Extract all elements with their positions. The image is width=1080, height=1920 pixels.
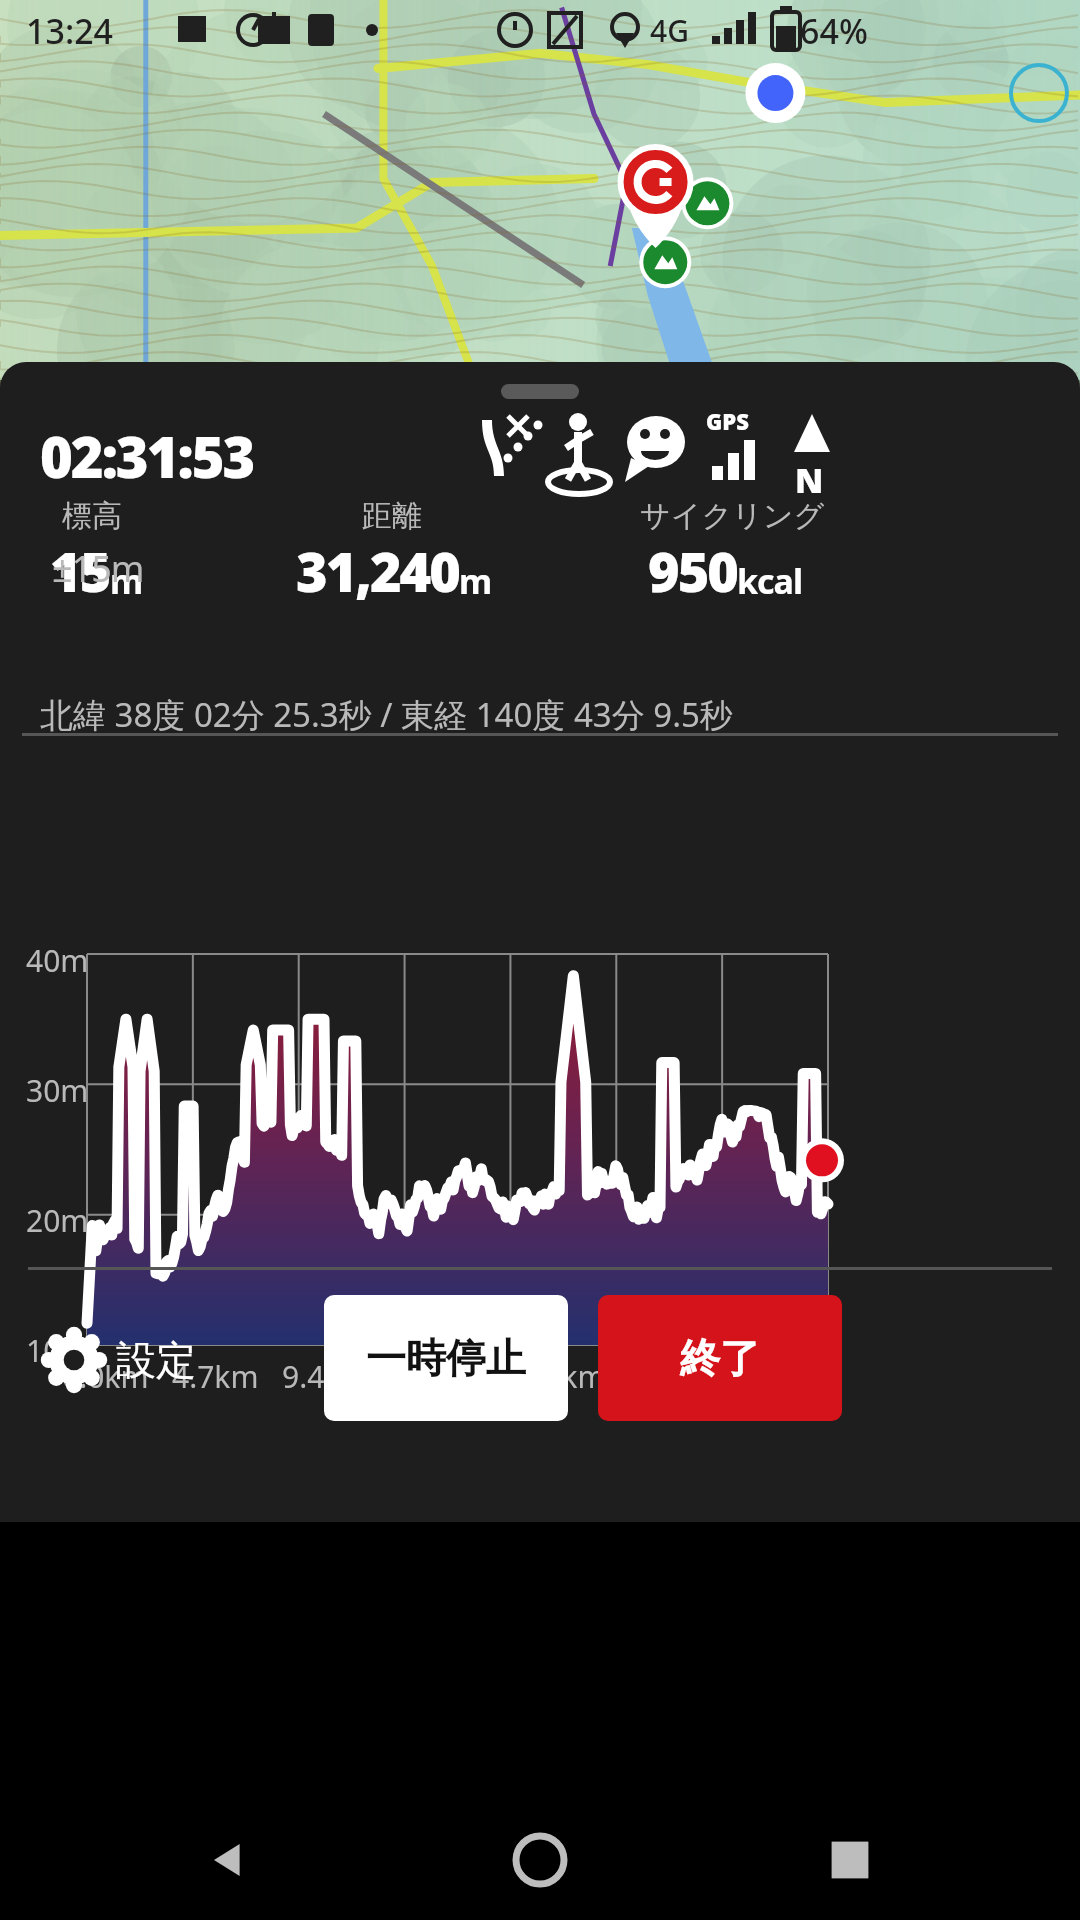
staticText: kcal: [737, 558, 803, 604]
staticText: 4.7km: [172, 1356, 259, 1397]
button[interactable]: Home: [500, 1820, 580, 1900]
staticText: 0.0km: [62, 1356, 149, 1397]
staticText: 64%: [800, 8, 868, 54]
staticText: 9.4km: [282, 1356, 369, 1397]
staticText: 18.7km: [502, 1356, 606, 1397]
staticText: 北緯 38度 02分 25.3秒 / 東経 140度 43分 9.5秒: [40, 692, 733, 737]
staticText: 02:31:53: [40, 418, 254, 494]
staticText: GPS: [706, 406, 749, 436]
button[interactable]: 設定: [32, 1312, 232, 1408]
staticText: 14.1km: [392, 1356, 496, 1397]
staticText: m: [459, 558, 492, 604]
staticText: 距離: [362, 497, 422, 535]
staticText: 一時停止: [366, 1333, 526, 1383]
staticText: 10m: [26, 1330, 89, 1371]
staticText: 20m: [26, 1200, 89, 1241]
button[interactable]: 一時停止: [324, 1295, 568, 1421]
staticText: 31,240: [296, 534, 459, 608]
staticText: 設定: [116, 1335, 196, 1385]
staticText: 終了: [680, 1333, 760, 1383]
staticText: m: [110, 558, 143, 604]
staticText: 13:24: [26, 8, 114, 54]
button[interactable]: Back: [190, 1820, 270, 1900]
staticText: 23.4km: [612, 1356, 716, 1397]
staticText: 40m: [26, 940, 89, 981]
staticText: サイクリング: [640, 497, 825, 535]
staticText: 950: [648, 534, 737, 608]
button[interactable]: 終了: [598, 1295, 842, 1421]
staticText: 15: [50, 534, 110, 608]
staticText: 28.1km: [722, 1356, 826, 1397]
staticText: 標高: [62, 497, 122, 535]
staticText: 4G: [650, 10, 689, 51]
staticText: 30m: [26, 1070, 89, 1111]
button[interactable]: Recent apps: [810, 1820, 890, 1900]
staticText: N: [795, 457, 824, 503]
staticText: ±15m: [52, 544, 144, 593]
